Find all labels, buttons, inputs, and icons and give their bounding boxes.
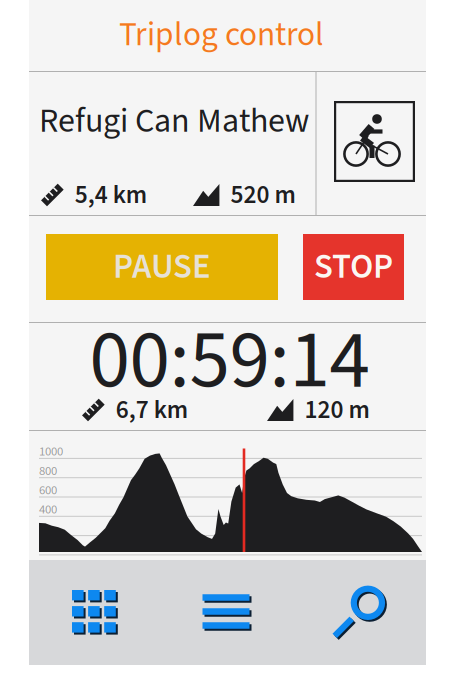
staticText: 6,7 km	[116, 392, 188, 428]
staticText: 600	[39, 481, 57, 499]
staticText: 1000	[39, 443, 63, 461]
staticText: 00:59:14	[89, 303, 369, 419]
staticText: Triplog control	[119, 11, 324, 58]
button[interactable]: STOP	[303, 234, 404, 300]
staticText: 120 m	[304, 392, 369, 428]
staticText: 400	[39, 500, 57, 518]
staticText: 5,4 km	[75, 177, 147, 213]
button[interactable]: Activities	[161, 560, 293, 665]
staticText: STOP	[314, 242, 393, 292]
staticText: PAUSE	[113, 242, 211, 292]
button[interactable]: Dashboard	[29, 560, 161, 665]
staticText: 520 m	[230, 177, 295, 213]
button[interactable]: Search	[293, 560, 426, 665]
button[interactable]: PAUSE	[46, 234, 278, 300]
staticText: 800	[39, 462, 57, 480]
staticText: Refugi Can Mathew	[39, 97, 309, 145]
